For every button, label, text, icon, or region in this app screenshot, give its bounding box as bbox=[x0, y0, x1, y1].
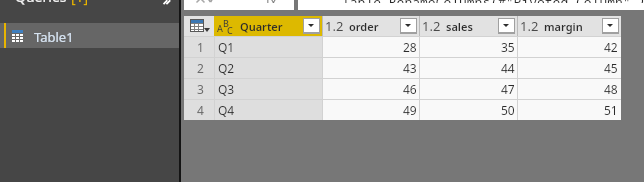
staticText: Q1 bbox=[218, 39, 235, 55]
staticText: C bbox=[227, 24, 233, 36]
staticText: 47 bbox=[501, 81, 515, 97]
staticText: Quarter bbox=[240, 19, 283, 34]
button[interactable]: 35 bbox=[419, 36, 517, 57]
button[interactable]: Q3 bbox=[214, 78, 322, 99]
staticText: 44 bbox=[501, 60, 515, 76]
button[interactable]: Table1 bbox=[0, 23, 179, 48]
button[interactable]: 51 bbox=[517, 99, 621, 120]
button[interactable]: Q4 bbox=[214, 99, 322, 120]
staticText: 48 bbox=[604, 81, 618, 97]
button[interactable]: Table options bbox=[184, 16, 214, 36]
staticText: B bbox=[223, 17, 229, 29]
button[interactable]: Q1 bbox=[214, 36, 322, 57]
staticText: 42 bbox=[604, 39, 618, 55]
button[interactable]: 3 bbox=[184, 78, 214, 99]
staticText: 28 bbox=[403, 39, 417, 55]
button[interactable]: 4 bbox=[184, 99, 214, 120]
staticText: 1.2 bbox=[422, 17, 441, 35]
staticText: sales bbox=[446, 19, 473, 34]
staticText: A bbox=[217, 22, 223, 34]
staticText: Table1 bbox=[34, 28, 74, 46]
staticText: Queries bbox=[15, 0, 71, 6]
button[interactable]: Filter column bbox=[602, 18, 619, 34]
staticText: 51 bbox=[604, 102, 618, 118]
staticText: [1] bbox=[71, 0, 89, 6]
button[interactable]: A bbox=[214, 16, 322, 36]
button[interactable]: Filter column bbox=[498, 18, 515, 34]
staticText: Q2 bbox=[218, 60, 235, 76]
staticText: 4 bbox=[197, 102, 204, 118]
button[interactable]: Accept bbox=[206, 0, 217, 3]
button[interactable]: Filter column bbox=[303, 18, 320, 34]
button[interactable]: Advanced editor bbox=[266, 0, 282, 3]
staticText: 50 bbox=[501, 102, 515, 118]
button[interactable]: 48 bbox=[517, 78, 621, 99]
button[interactable]: 1 bbox=[184, 36, 214, 57]
button[interactable]: 1.2 bbox=[419, 16, 517, 36]
staticText: Table.RenameColumns(#"Pivoted Column",{{ bbox=[342, 0, 644, 3]
staticText: Q3 bbox=[218, 81, 235, 97]
staticText: 46 bbox=[403, 81, 417, 97]
staticText: order bbox=[349, 19, 379, 34]
button[interactable]: 43 bbox=[322, 57, 419, 78]
button[interactable]: 2 bbox=[184, 57, 214, 78]
staticText: 43 bbox=[403, 60, 417, 76]
staticText: 3 bbox=[197, 81, 204, 97]
button[interactable]: 46 bbox=[322, 78, 419, 99]
button[interactable]: 1.2 bbox=[322, 16, 419, 36]
staticText: 49 bbox=[403, 102, 417, 118]
button[interactable]: 44 bbox=[419, 57, 517, 78]
button[interactable]: 1.2 bbox=[517, 16, 621, 36]
staticText: 2 bbox=[197, 60, 204, 76]
button[interactable]: 47 bbox=[419, 78, 517, 99]
button[interactable]: 28 bbox=[322, 36, 419, 57]
staticText: fx bbox=[266, 0, 277, 3]
button[interactable]: 50 bbox=[419, 99, 517, 120]
button[interactable]: 49 bbox=[322, 99, 419, 120]
staticText: 1.2 bbox=[325, 17, 344, 35]
button[interactable]: Collapse queries pane bbox=[163, 0, 175, 8]
staticText: 1 bbox=[197, 39, 204, 55]
button[interactable]: Q2 bbox=[214, 57, 322, 78]
staticText: Q4 bbox=[218, 102, 235, 118]
button[interactable]: Cancel bbox=[195, 0, 206, 3]
staticText: margin bbox=[544, 19, 583, 34]
staticText: 35 bbox=[501, 39, 515, 55]
staticText: 45 bbox=[604, 60, 618, 76]
button[interactable]: Filter column bbox=[400, 18, 417, 34]
button[interactable]: 42 bbox=[517, 36, 621, 57]
staticText: 1.2 bbox=[520, 17, 539, 35]
button[interactable]: 45 bbox=[517, 57, 621, 78]
